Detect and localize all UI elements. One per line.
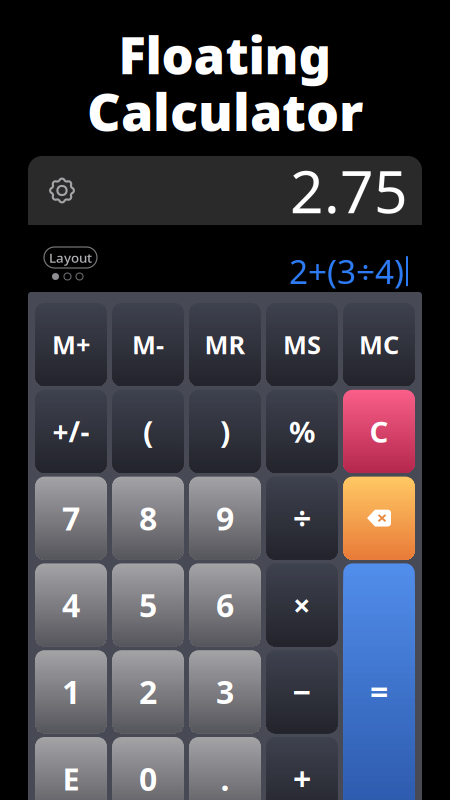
button[interactable]: − [266,650,337,733]
button[interactable]: 3 [189,650,260,733]
staticText: 3 [216,670,234,713]
staticText: 0 [139,757,157,800]
button[interactable]: ( [112,390,183,473]
staticText: 2.75 [290,151,408,229]
staticText: 8 [139,497,157,539]
button[interactable]: 5 [112,563,183,646]
staticText: + [293,757,311,800]
staticText: 5 [139,584,157,626]
button[interactable]: Backspace [343,477,414,560]
button[interactable]: 7 [35,477,106,560]
staticText: 4 [62,584,80,626]
staticText: C [369,412,388,451]
staticText: − [292,670,311,713]
staticText: M+ [52,328,90,361]
button[interactable]: 9 [189,477,260,560]
button[interactable]: C [343,390,414,473]
button[interactable]: × [266,563,337,646]
button[interactable]: % [266,390,337,473]
staticText: × [293,584,311,625]
button[interactable]: 0 [112,737,183,800]
staticText: 9 [216,497,234,539]
staticText: = [370,670,388,713]
button[interactable]: +/- [35,390,106,473]
staticText: 2+(3÷4) [289,249,404,293]
button[interactable]: ÷ [266,477,337,560]
staticText: MC [359,328,399,361]
staticText: Calculator [87,76,363,145]
staticText: 6 [216,584,234,626]
staticText: +/- [52,413,89,450]
staticText: 1 [62,670,80,713]
staticText: E [62,758,79,799]
button[interactable]: E [35,737,106,800]
button[interactable]: 4 [35,563,106,646]
button[interactable]: M+ [35,303,106,386]
button[interactable]: 2 [112,650,183,733]
staticText: ) [220,411,230,452]
button[interactable]: 1 [35,650,106,733]
button[interactable]: MS [266,303,337,386]
button[interactable]: + [266,737,337,800]
button[interactable]: Layout [44,247,97,268]
staticText: % [289,412,315,451]
staticText: MR [204,328,245,361]
button[interactable]: 8 [112,477,183,560]
staticText: Floating [118,21,331,88]
button[interactable]: MR [189,303,260,386]
button[interactable]: ) [189,390,260,473]
button[interactable]: = [343,563,414,800]
staticText: MS [283,328,321,361]
button[interactable]: MC [343,303,414,386]
button[interactable]: . [189,737,260,800]
button[interactable]: Settings [42,170,82,210]
staticText: 2 [139,670,157,713]
button[interactable]: M- [112,303,183,386]
staticText: ÷ [293,497,311,539]
staticText: Layout [49,249,92,266]
staticText: . [220,757,229,800]
staticText: ( [143,411,153,452]
button[interactable]: 6 [189,563,260,646]
staticText: 7 [62,497,80,539]
staticText: M- [132,328,164,361]
